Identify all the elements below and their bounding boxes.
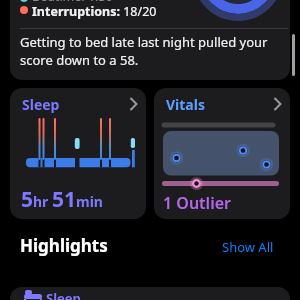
button[interactable]: Bedtime: 1:30 [10,0,290,80]
staticText: Sleep [22,95,60,114]
button[interactable]: Vitals [154,88,290,219]
staticText: Vitals [166,95,205,114]
staticText: Bedtime: 1:30 [32,0,113,5]
button[interactable]: Show All [222,238,274,256]
staticText: 1 Outlier [163,192,231,214]
staticText: 5hr 51min [21,185,103,214]
staticText: Sleep [46,289,81,300]
button[interactable]: Sleep [10,287,290,300]
staticText: Highlights [20,234,108,257]
button[interactable]: Sleep [10,88,146,219]
staticText: Interruptions: 18/20 [32,3,157,20]
staticText: Getting to bed late last night pulled yo… [20,33,268,69]
